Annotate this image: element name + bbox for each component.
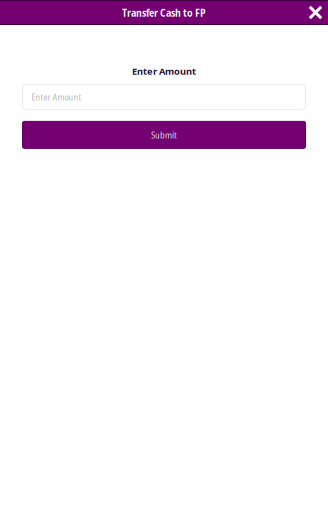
button[interactable]: Submit [22, 121, 305, 148]
staticText: Submit [151, 128, 177, 141]
button[interactable]: Close [303, 0, 328, 24]
staticText: Enter Amount [132, 65, 196, 77]
staticText: Transfer Cash to FP [122, 5, 206, 20]
button[interactable]: Enter Amount [22, 84, 305, 109]
staticText: Enter Amount [31, 91, 81, 103]
